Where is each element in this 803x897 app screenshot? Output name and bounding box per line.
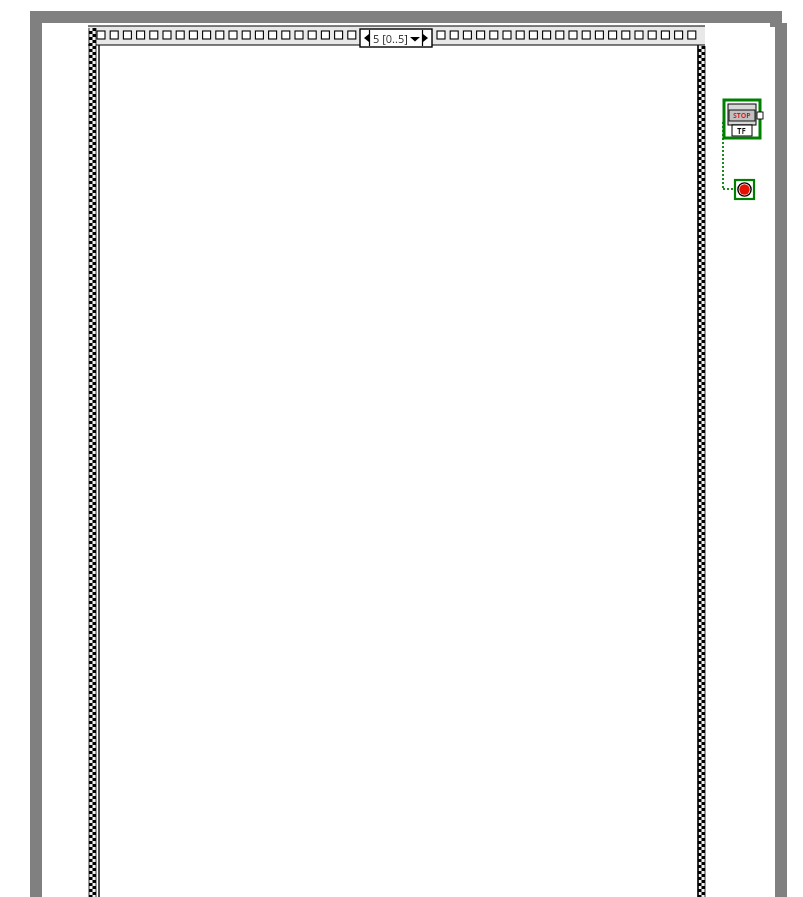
button[interactable]: Block diagram canvas [0, 0, 803, 897]
